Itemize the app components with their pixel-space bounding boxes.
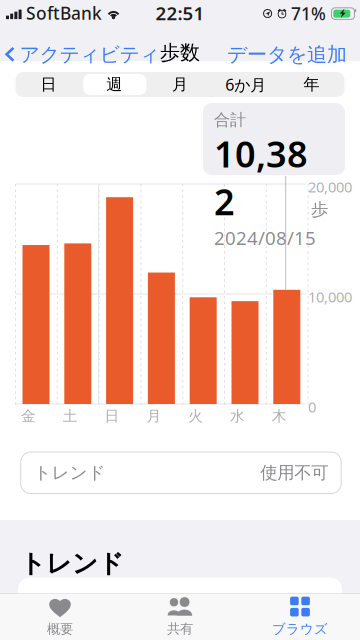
staticText: 金 bbox=[21, 407, 36, 425]
button[interactable]: アクティビティ bbox=[0, 37, 159, 72]
button[interactable]: 概要 bbox=[0, 594, 120, 639]
button[interactable]: 日 bbox=[15, 72, 81, 97]
button[interactable]: 月 bbox=[147, 72, 213, 97]
button[interactable]: ブラウズ bbox=[240, 594, 360, 639]
staticText: ブラウズ bbox=[272, 621, 328, 637]
staticText: 0 bbox=[308, 397, 316, 416]
button[interactable]: 共有 bbox=[120, 594, 240, 639]
button[interactable]: 週 bbox=[81, 72, 147, 97]
staticText: 共有 bbox=[167, 621, 193, 637]
staticText: 月 bbox=[172, 75, 188, 94]
staticText: 日 bbox=[40, 75, 56, 94]
staticText: 20,000 bbox=[308, 177, 352, 196]
staticText: 概要 bbox=[47, 621, 73, 637]
staticText: トレンド bbox=[34, 462, 106, 483]
staticText: 2024/08/15 bbox=[214, 225, 316, 250]
button[interactable]: 6か月 bbox=[213, 72, 279, 97]
staticText: データを追加 bbox=[227, 42, 347, 67]
staticText: 土 bbox=[63, 407, 78, 425]
staticText: 71% bbox=[291, 2, 326, 25]
staticText: 歩 bbox=[311, 199, 328, 220]
staticText: 日 bbox=[105, 407, 120, 425]
staticText: 週 bbox=[106, 75, 122, 94]
staticText: 年 bbox=[304, 75, 320, 94]
staticText: 使用不可 bbox=[260, 462, 328, 483]
staticText: アクティビティ bbox=[19, 42, 159, 67]
staticText: 火 bbox=[188, 407, 203, 425]
staticText: 6か月 bbox=[225, 74, 266, 95]
staticText: 歩数 bbox=[160, 40, 200, 65]
staticText: 10,382 bbox=[214, 130, 308, 225]
staticText: 合計 bbox=[214, 110, 246, 130]
staticText: 10,000 bbox=[308, 287, 352, 306]
staticText: 22:51 bbox=[155, 1, 204, 25]
staticText: SoftBank bbox=[26, 2, 102, 25]
button[interactable]: データを追加 bbox=[227, 37, 360, 72]
staticText: トレンド bbox=[20, 548, 124, 579]
staticText: 水 bbox=[230, 407, 245, 425]
button[interactable]: 年 bbox=[279, 72, 344, 97]
staticText: 月 bbox=[146, 407, 161, 425]
staticText: 木 bbox=[272, 407, 287, 425]
